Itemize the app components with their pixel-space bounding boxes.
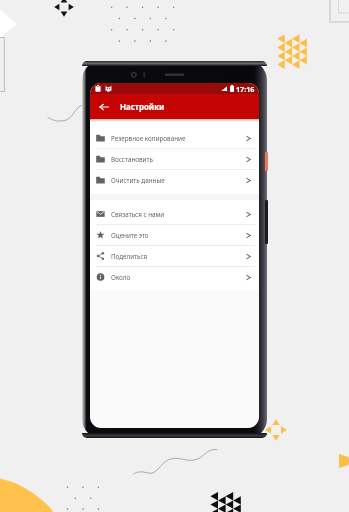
button[interactable]: Резервное копирование xyxy=(90,128,259,148)
button[interactable]: Очистить данные xyxy=(90,170,259,190)
button[interactable]: Оцените это xyxy=(90,225,259,245)
staticText: 17:16 xyxy=(236,84,255,94)
staticText: Оцените это xyxy=(111,231,149,240)
button[interactable]: Около xyxy=(90,267,259,287)
staticText: Очистить данные xyxy=(111,176,165,185)
button[interactable]: Поделиться xyxy=(90,246,259,266)
staticText: Восстановить xyxy=(111,155,153,164)
staticText: Около xyxy=(111,273,131,282)
button[interactable]: Связаться с нами xyxy=(90,204,259,224)
staticText: Резервное копирование xyxy=(111,134,186,143)
staticText: Настройки xyxy=(120,102,165,113)
staticText: Поделиться xyxy=(111,252,148,261)
button[interactable]: Восстановить xyxy=(90,149,259,169)
staticText: Связаться с нами xyxy=(111,210,165,219)
button[interactable]: Back xyxy=(90,94,117,119)
